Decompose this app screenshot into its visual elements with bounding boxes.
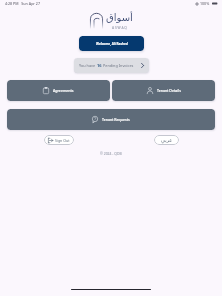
staticText: Welcome, Ali Rashed	[96, 42, 128, 46]
staticText: Tenant Details	[157, 88, 181, 93]
staticText: © 2024 - QDB	[100, 151, 122, 156]
staticText: أسواق	[106, 12, 133, 24]
staticText: عربي	[161, 137, 173, 143]
button[interactable]: You have	[74, 58, 149, 73]
staticText: 100%	[200, 1, 210, 6]
staticText: Tenant Requests	[102, 117, 130, 122]
staticText: Sign Out	[55, 138, 70, 143]
staticText: You have	[79, 63, 97, 68]
staticText: Agreements	[53, 88, 74, 93]
staticText: ASWAQ	[112, 25, 128, 29]
button[interactable]: Tenant Details	[112, 80, 215, 101]
staticText: 16	[97, 63, 102, 68]
button[interactable]: Agreements	[7, 80, 110, 101]
button[interactable]: عربي	[154, 135, 179, 145]
staticText: Pending Invoices	[102, 63, 134, 68]
button[interactable]: Tenant Requests	[7, 109, 215, 130]
staticText: 4:28 PM Sun Apr 27	[5, 1, 40, 6]
button[interactable]: Welcome, Ali Rashed	[79, 36, 144, 51]
button[interactable]: Sign Out	[44, 135, 74, 145]
